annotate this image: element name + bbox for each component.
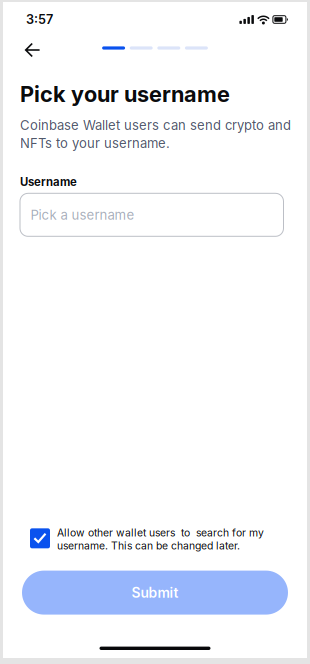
staticText: Allow other wallet users to search for m…: [57, 526, 264, 539]
staticText: Username: [20, 175, 77, 189]
staticText: 3:57: [26, 12, 53, 27]
staticText: Submit: [131, 584, 178, 601]
staticText: Pick your username: [20, 81, 230, 107]
staticText: Pick a username: [30, 207, 134, 223]
staticText: Coinbase Wallet users can send crypto an…: [20, 117, 291, 133]
button[interactable]: Allow other wallet users to search for m…: [3, 520, 307, 552]
staticText: NFTs to your username.: [20, 135, 170, 151]
button[interactable]: Submit: [3, 552, 307, 615]
button[interactable]: Pick a username: [20, 189, 283, 236]
staticText: username. This can be changed later.: [57, 539, 240, 552]
button[interactable]: Back: [3, 35, 59, 65]
